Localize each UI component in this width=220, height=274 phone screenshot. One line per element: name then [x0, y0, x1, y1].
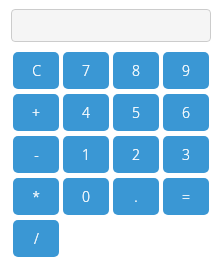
- staticText: -: [34, 145, 39, 164]
- button[interactable]: 7: [63, 52, 109, 89]
- staticText: /: [34, 229, 39, 248]
- button[interactable]: 0: [63, 178, 109, 215]
- button[interactable]: -: [13, 136, 59, 173]
- staticText: 2: [132, 145, 140, 164]
- staticText: =: [182, 187, 190, 206]
- button[interactable]: C: [13, 52, 59, 89]
- staticText: 7: [82, 61, 90, 80]
- button[interactable]: 8: [113, 52, 159, 89]
- button[interactable]: Calculator display: [11, 9, 211, 42]
- staticText: +: [32, 103, 40, 122]
- button[interactable]: 5: [113, 94, 159, 131]
- staticText: C: [32, 61, 41, 80]
- button[interactable]: 1: [63, 136, 109, 173]
- button[interactable]: +: [13, 94, 59, 131]
- button[interactable]: 2: [113, 136, 159, 173]
- button[interactable]: 3: [163, 136, 209, 173]
- staticText: *: [32, 187, 40, 206]
- button[interactable]: 9: [163, 52, 209, 89]
- button[interactable]: *: [13, 178, 59, 215]
- staticText: 9: [182, 61, 190, 80]
- staticText: 6: [182, 103, 190, 122]
- button[interactable]: /: [13, 220, 59, 257]
- staticText: 1: [82, 145, 90, 164]
- staticText: 3: [182, 145, 190, 164]
- staticText: .: [134, 187, 138, 206]
- staticText: 5: [132, 103, 140, 122]
- button[interactable]: 4: [63, 94, 109, 131]
- button[interactable]: .: [113, 178, 159, 215]
- staticText: 0: [82, 187, 90, 206]
- staticText: 8: [132, 61, 140, 80]
- button[interactable]: 6: [163, 94, 209, 131]
- button[interactable]: =: [163, 178, 209, 215]
- staticText: 4: [82, 103, 90, 122]
